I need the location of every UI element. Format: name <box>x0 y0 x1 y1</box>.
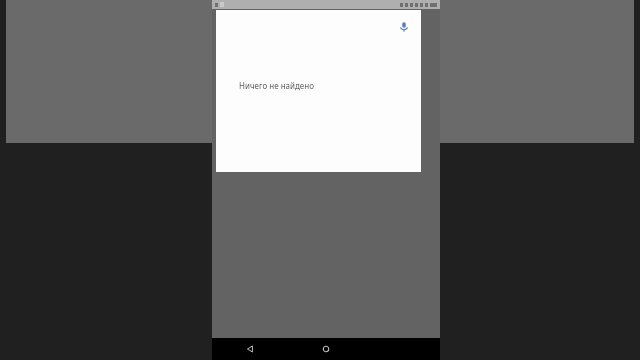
button[interactable]: Back <box>212 338 288 360</box>
button[interactable]: Home <box>288 338 364 360</box>
staticText: Ничего не найдено <box>239 80 314 91</box>
button[interactable]: Voice search <box>395 18 413 36</box>
